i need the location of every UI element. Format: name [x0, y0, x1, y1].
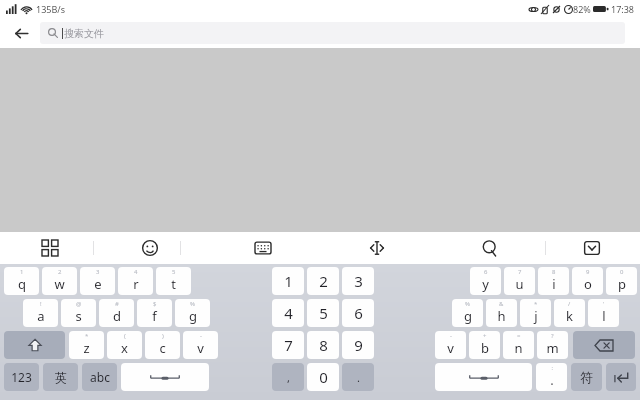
button[interactable]: .: [342, 363, 374, 391]
button[interactable]: i: [538, 267, 569, 295]
button[interactable]: 4: [272, 299, 304, 327]
staticText: 135B/s: [36, 3, 65, 15]
button[interactable]: r: [118, 267, 153, 295]
button[interactable]: Emoji: [134, 232, 166, 264]
button[interactable]: 英: [43, 363, 78, 391]
button[interactable]: t: [156, 267, 191, 295]
button[interactable]: x: [107, 331, 142, 359]
staticText: z: [83, 339, 90, 357]
staticText: 8: [319, 335, 328, 355]
staticText: *: [534, 300, 538, 308]
button[interactable]: z: [69, 331, 104, 359]
staticText: u: [515, 275, 524, 293]
button[interactable]: Keyboard: [247, 232, 279, 264]
staticText: %: [190, 300, 195, 308]
button[interactable]: v: [183, 331, 218, 359]
staticText: 4: [134, 268, 138, 276]
button[interactable]: q: [4, 267, 39, 295]
staticText: 0: [319, 367, 328, 387]
button[interactable]: b: [469, 331, 500, 359]
button[interactable]: 5: [307, 299, 339, 327]
staticText: x: [121, 339, 128, 357]
button[interactable]: m: [537, 331, 568, 359]
staticText: @: [76, 300, 82, 308]
button[interactable]: n: [503, 331, 534, 359]
staticText: &: [499, 300, 504, 308]
staticText: 1: [284, 271, 293, 291]
button[interactable]: k: [554, 299, 585, 327]
staticText: +: [483, 332, 487, 340]
button[interactable]: a: [23, 299, 58, 327]
staticText: 7: [284, 335, 293, 355]
staticText: 2: [319, 271, 328, 291]
button[interactable]: abc: [82, 363, 117, 391]
button[interactable]: 6: [342, 299, 374, 327]
staticText: 1: [20, 268, 24, 276]
button[interactable]: 符: [571, 363, 602, 391]
button[interactable]: 7: [272, 331, 304, 359]
staticText: j: [534, 307, 538, 325]
staticText: p: [618, 275, 626, 293]
staticText: /: [568, 300, 571, 308]
button[interactable]: 2: [307, 267, 339, 295]
button[interactable]: 1: [272, 267, 304, 295]
button[interactable]: Backspace: [573, 331, 635, 359]
button[interactable]: v: [435, 331, 466, 359]
button[interactable]: 9: [342, 331, 374, 359]
button[interactable]: Space: [435, 363, 532, 391]
staticText: 0: [620, 268, 624, 276]
button[interactable]: u: [504, 267, 535, 295]
button[interactable]: g: [452, 299, 483, 327]
button[interactable]: y: [470, 267, 501, 295]
staticText: =: [517, 332, 521, 340]
staticText: f: [152, 307, 157, 325]
button[interactable]: f: [137, 299, 172, 327]
staticText: 82%: [573, 3, 591, 15]
staticText: l: [602, 307, 606, 325]
button[interactable]: j: [520, 299, 551, 327]
button[interactable]: l: [588, 299, 619, 327]
button[interactable]: Space: [121, 363, 209, 391]
button[interactable]: 8: [307, 331, 339, 359]
button[interactable]: d: [99, 299, 134, 327]
button[interactable]: Apps: [34, 232, 66, 264]
button[interactable]: p: [606, 267, 637, 295]
button[interactable]: g: [175, 299, 210, 327]
button[interactable]: Shift: [4, 331, 65, 359]
button[interactable]: 搜索文件: [40, 22, 625, 44]
button[interactable]: Search: [474, 232, 506, 264]
staticText: ?: [551, 332, 554, 340]
staticText: 3: [354, 271, 363, 291]
staticText: abc: [90, 369, 110, 385]
button[interactable]: 123: [4, 363, 39, 391]
staticText: 3: [96, 268, 100, 276]
staticText: 17:38: [611, 3, 635, 15]
button[interactable]: Move cursor: [361, 232, 393, 264]
button[interactable]: ,: [272, 363, 304, 391]
button[interactable]: .: [536, 363, 567, 391]
button[interactable]: 3: [342, 267, 374, 295]
button[interactable]: o: [572, 267, 603, 295]
staticText: #: [115, 300, 119, 308]
button[interactable]: Enter: [606, 363, 636, 391]
staticText: 2: [58, 268, 62, 276]
staticText: ': [603, 300, 605, 308]
staticText: k: [566, 307, 573, 325]
button[interactable]: c: [145, 331, 180, 359]
staticText: g: [189, 307, 197, 325]
button[interactable]: Hide keyboard: [576, 232, 608, 264]
staticText: 6: [354, 303, 363, 323]
button[interactable]: w: [42, 267, 77, 295]
staticText: v: [447, 339, 454, 357]
staticText: -: [200, 332, 202, 340]
button[interactable]: e: [80, 267, 115, 295]
staticText: g: [464, 307, 472, 325]
staticText: 8: [552, 268, 556, 276]
button[interactable]: 0: [307, 363, 339, 391]
staticText: n: [514, 339, 523, 357]
staticText: q: [18, 275, 26, 293]
button[interactable]: h: [486, 299, 517, 327]
staticText: 7: [518, 268, 522, 276]
button[interactable]: Back: [8, 20, 34, 46]
button[interactable]: s: [61, 299, 96, 327]
